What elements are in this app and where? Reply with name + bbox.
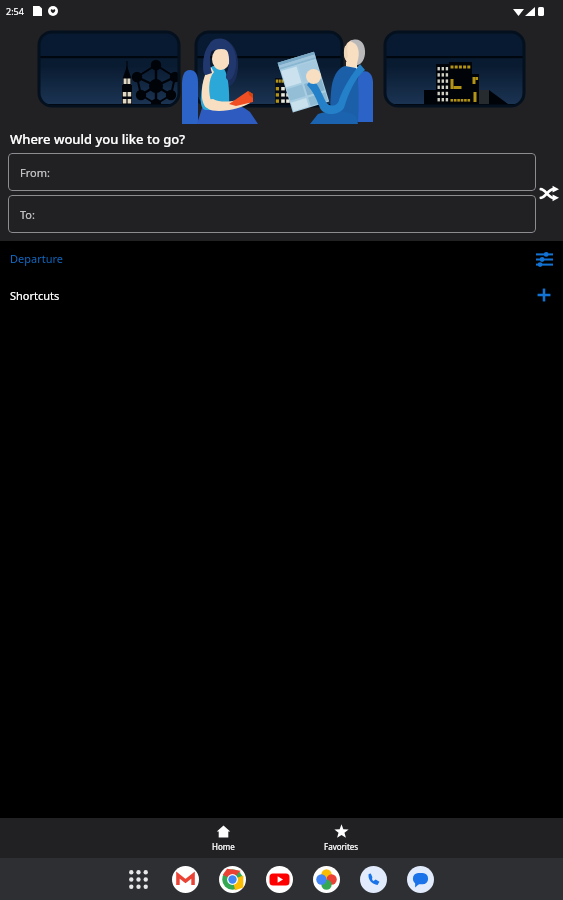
- staticText: Where would you like to go?: [10, 130, 186, 148]
- button[interactable]: To:: [8, 195, 536, 233]
- button[interactable]: Shortcuts: [0, 276, 563, 314]
- button[interactable]: Gmail: [172, 866, 199, 893]
- button[interactable]: Chrome: [219, 866, 246, 893]
- button[interactable]: All apps: [124, 865, 152, 893]
- button[interactable]: Favorites: [298, 818, 384, 858]
- button[interactable]: Add shortcut: [533, 284, 555, 306]
- button[interactable]: Swap from and to: [536, 180, 563, 207]
- staticText: Departure: [10, 251, 64, 266]
- button[interactable]: YouTube: [266, 866, 293, 893]
- staticText: To:: [20, 207, 35, 222]
- button[interactable]: Home: [180, 818, 266, 858]
- button[interactable]: From:: [8, 153, 536, 191]
- staticText: Favorites: [324, 841, 359, 852]
- button[interactable]: Messages: [407, 866, 434, 893]
- button[interactable]: Departure: [0, 241, 563, 276]
- button[interactable]: Photos: [313, 866, 340, 893]
- staticText: 2:54: [6, 5, 24, 17]
- staticText: From:: [20, 165, 50, 180]
- staticText: Home: [212, 841, 235, 852]
- button[interactable]: Phone: [360, 866, 387, 893]
- staticText: Shortcuts: [10, 288, 60, 303]
- button[interactable]: Filter departures: [533, 248, 555, 270]
